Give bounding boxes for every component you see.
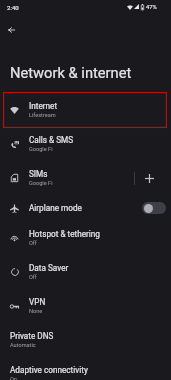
staticText: Private DNS [10, 331, 54, 341]
button[interactable]: Internet [0, 93, 171, 127]
staticText: Network & internet [10, 64, 132, 81]
staticText: Adaptive connectivity [10, 365, 88, 375]
staticText: Google Fi [29, 180, 53, 187]
button[interactable]: Airplane mode [0, 195, 171, 221]
button[interactable]: Back [1, 20, 21, 40]
staticText: 47% [146, 4, 157, 11]
staticText: Calls & SMS [29, 135, 74, 145]
button[interactable]: SIMs [0, 161, 171, 195]
button[interactable]: Data Saver [0, 255, 171, 289]
staticText: Hotspot & tethering [29, 229, 100, 239]
staticText: Google Fi [29, 146, 53, 153]
staticText: Off [29, 240, 37, 247]
staticText: SIMs [29, 169, 48, 179]
staticText: Off [29, 274, 37, 281]
staticText: None [29, 308, 43, 315]
staticText: Lifestream [29, 112, 56, 119]
staticText: 2:40 [7, 4, 19, 11]
button[interactable]: VPN [0, 289, 171, 323]
button[interactable]: Private DNS [0, 323, 171, 357]
staticText: VPN [29, 297, 46, 307]
staticText: Airplane mode [29, 203, 82, 213]
button[interactable]: Adaptive connectivity [0, 357, 171, 380]
button[interactable]: Hotspot & tethering [0, 221, 171, 255]
staticText: Automatic [10, 342, 36, 349]
button[interactable]: Airplane mode toggle [142, 202, 166, 214]
button[interactable]: Calls & SMS [0, 127, 171, 161]
button[interactable]: Add SIM [139, 168, 159, 188]
staticText: On [10, 376, 17, 380]
staticText: Data Saver [29, 263, 69, 273]
staticText: Internet [29, 101, 58, 111]
